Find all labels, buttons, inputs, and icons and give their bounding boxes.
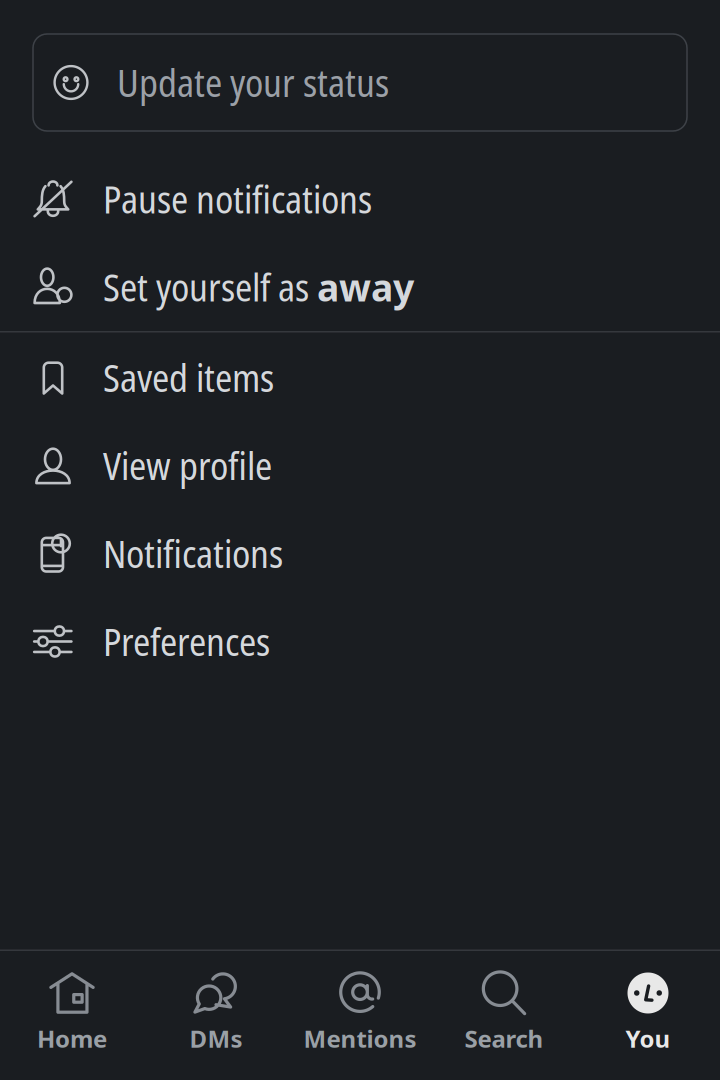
staticText: View profile [103,440,272,491]
staticText: Home [37,1022,107,1055]
staticText: Set yourself as away [103,262,414,312]
staticText: DMs [189,1022,242,1055]
button[interactable]: Update your status [0,0,720,131]
staticText: You [625,1022,670,1055]
button[interactable]: Pause notifications [0,155,720,243]
staticText: Notifications [103,528,283,579]
button[interactable]: Preferences [0,597,720,685]
button[interactable]: Saved items [0,333,720,421]
staticText: Saved items [103,352,274,403]
staticText: Search [464,1022,543,1055]
button[interactable]: Home [0,971,144,1055]
button[interactable]: DMs [144,971,288,1055]
button[interactable]: View profile [0,421,720,509]
button[interactable]: You [576,971,720,1055]
button[interactable]: Notifications [0,509,720,597]
button[interactable]: Search [432,971,576,1055]
button[interactable]: Set yourself as away [0,243,720,331]
button[interactable]: Mentions [288,971,432,1055]
staticText: Mentions [303,1022,416,1055]
staticText: Pause notifications [103,174,372,224]
staticText: Update your status [117,57,389,108]
staticText: Preferences [103,616,270,667]
